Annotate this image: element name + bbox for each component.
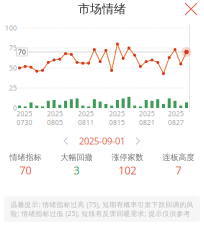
staticText: 市场情绪 [78,2,126,16]
staticText: 3 [73,163,79,177]
staticText: 涨停家数 [111,152,143,162]
staticText: 大幅回撤 [60,152,92,162]
staticText: 102 [118,163,136,177]
staticText: 0730 [16,118,32,127]
staticText: 2025 [78,109,94,118]
staticText: 100 [5,24,17,32]
staticText: 25 [9,84,17,92]
staticText: 50 [9,64,17,72]
staticText: 70 [18,48,26,56]
staticText: 2025 [168,109,184,118]
staticText: 连板高度 [162,152,194,162]
button[interactable]: Next day [133,134,143,147]
staticText: 7 [175,163,181,177]
staticText: 2025 [109,109,125,118]
staticText: 0 [13,104,17,112]
staticText: 2025 [16,109,32,118]
staticText: 2025 [47,109,63,118]
staticText: 0827 [168,118,184,127]
button[interactable]: Previous day [61,134,71,147]
staticText: 0821 [139,118,155,127]
button[interactable]: Close [180,0,202,20]
staticText: 0815 [109,118,125,127]
staticText: 70 [19,163,31,177]
staticText: 2025-09-01 [79,135,125,147]
staticText: 2025 [139,109,155,118]
staticText: 0805 [47,118,63,127]
staticText: 0811 [78,118,94,127]
staticText: 情绪指标 [9,152,41,162]
staticText: 温馨提示: 情绪指标过高 (75), 短期有概率引发下跌回调的风险; 情绪指标过… [10,200,193,218]
staticText: 75 [9,44,17,52]
